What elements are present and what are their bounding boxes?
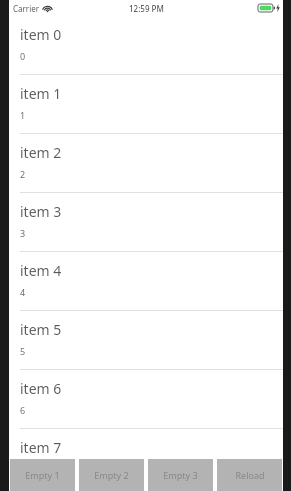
button[interactable]: item 1	[9, 75, 283, 134]
staticText: 12:59 PM	[129, 3, 164, 14]
staticText: item 7	[20, 438, 62, 455]
staticText: 5	[20, 345, 26, 357]
staticText: Carrier	[13, 3, 40, 14]
staticText: item 5	[20, 320, 62, 339]
staticText: item 1	[20, 84, 62, 103]
staticText: 0	[20, 50, 26, 62]
staticText: item 4	[20, 261, 62, 280]
staticText: item 3	[20, 202, 62, 221]
button[interactable]: item 0	[9, 16, 283, 75]
button[interactable]: Empty 2	[79, 459, 144, 491]
staticText: Empty 2	[94, 469, 129, 481]
button[interactable]: item 5	[9, 311, 283, 370]
button[interactable]: item 7	[9, 429, 283, 455]
staticText: Reload	[235, 469, 265, 481]
staticText: 4	[20, 286, 26, 298]
staticText: item 6	[20, 379, 62, 398]
button[interactable]: Empty 1	[10, 459, 75, 491]
button[interactable]: Reload	[217, 459, 282, 491]
staticText: 3	[20, 227, 26, 239]
staticText: Empty 3	[163, 469, 198, 481]
button[interactable]: item 2	[9, 134, 283, 193]
staticText: 2	[20, 168, 26, 180]
button[interactable]: item 4	[9, 252, 283, 311]
button[interactable]: item 3	[9, 193, 283, 252]
button[interactable]: Empty 3	[148, 459, 213, 491]
staticText: 6	[20, 404, 26, 416]
staticText: 1	[20, 109, 26, 121]
staticText: item 0	[20, 25, 62, 44]
staticText: item 2	[20, 143, 62, 162]
staticText: Empty 1	[25, 469, 60, 481]
button[interactable]: item 6	[9, 370, 283, 429]
